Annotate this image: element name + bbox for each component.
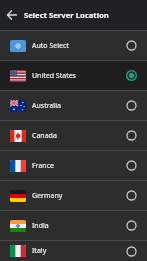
- staticText: France: [32, 161, 54, 171]
- button[interactable]: India: [0, 211, 147, 240]
- staticText: Australia: [32, 101, 61, 111]
- button[interactable]: United States: [0, 61, 147, 90]
- button[interactable]: Germany: [0, 181, 147, 210]
- staticText: Canada: [32, 131, 57, 141]
- staticText: Select Server Location: [24, 10, 109, 20]
- button[interactable]: [0, 3, 24, 27]
- button[interactable]: Australia: [0, 91, 147, 120]
- staticText: Italy: [32, 246, 47, 256]
- staticText: India: [32, 221, 49, 231]
- staticText: Auto Select: [32, 41, 69, 51]
- staticText: United States: [32, 71, 76, 81]
- button[interactable]: France: [0, 151, 147, 180]
- button[interactable]: Italy: [0, 241, 147, 261]
- staticText: Germany: [32, 191, 63, 201]
- button[interactable]: Canada: [0, 121, 147, 150]
- button[interactable]: Auto Select: [0, 31, 147, 60]
